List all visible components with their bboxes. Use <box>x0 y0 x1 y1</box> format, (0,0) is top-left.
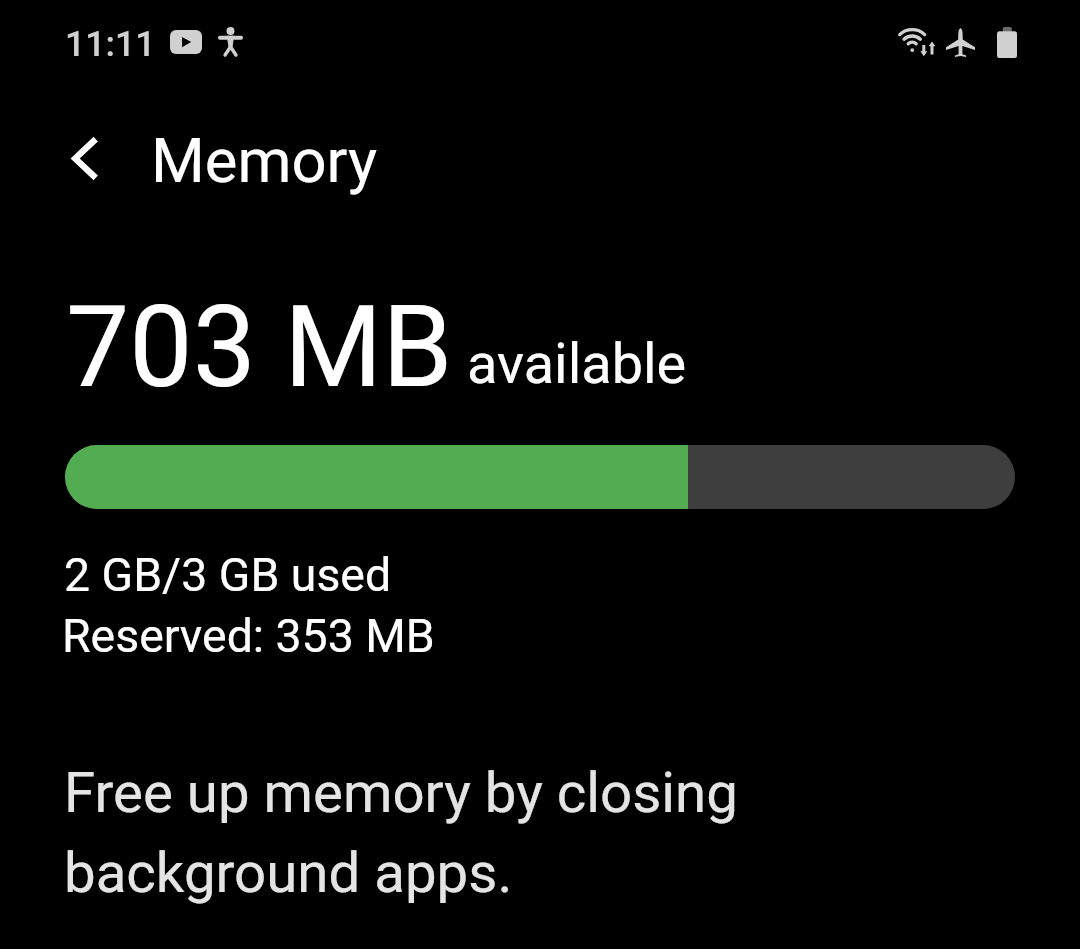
staticText: 11:11 <box>65 23 156 65</box>
button[interactable]: Memory usage 2 GB of 3 GB <box>65 445 1015 509</box>
staticText: Reserved: 353 MB <box>62 609 435 663</box>
staticText: 2 GB/3 GB used <box>64 548 392 602</box>
button[interactable]: Navigate up <box>40 114 130 202</box>
staticText: available <box>467 331 687 397</box>
staticText: Memory <box>151 125 378 197</box>
staticText: Free up memory by closing background app… <box>64 749 844 909</box>
staticText: 703 MB <box>66 281 453 413</box>
